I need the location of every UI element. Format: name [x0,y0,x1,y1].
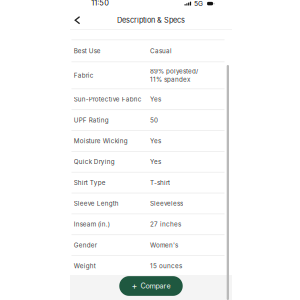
staticText: Best Use [74,47,101,55]
staticText: 11:50 [91,0,109,7]
staticText: Fabric [74,72,94,79]
staticText: 15 ounces [150,262,182,270]
staticText: 50 [150,116,158,124]
staticText: Sun-Protective Fabric [74,95,142,103]
staticText: T-shirt [150,179,170,186]
staticText: Sleeveless [150,200,183,207]
staticText: + [131,281,137,291]
staticText: 11% spandex [150,76,190,83]
staticText: Gender [74,241,97,249]
staticText: UPF Rating [74,116,109,124]
button[interactable]: Back [70,9,84,31]
staticText: Moisture Wicking [74,137,128,145]
staticText: Inseam (in.) [74,220,110,228]
staticText: 89% polyested/ [150,67,198,75]
staticText: Sleeve Length [74,200,119,207]
staticText: 5G [194,0,203,8]
staticText: Yes [150,137,161,145]
staticText: Women's [150,241,178,249]
button[interactable]: + [119,276,183,296]
staticText: Shirt Type [74,179,106,186]
staticText: Compare [141,282,171,290]
staticText: Casual [150,47,172,55]
staticText: Quick Drying [74,158,115,166]
staticText: Description & Specs [117,16,185,25]
staticText: 27 inches [150,220,181,228]
staticText: Weight [74,262,96,270]
staticText: Yes [150,95,161,103]
staticText: Yes [150,158,161,166]
